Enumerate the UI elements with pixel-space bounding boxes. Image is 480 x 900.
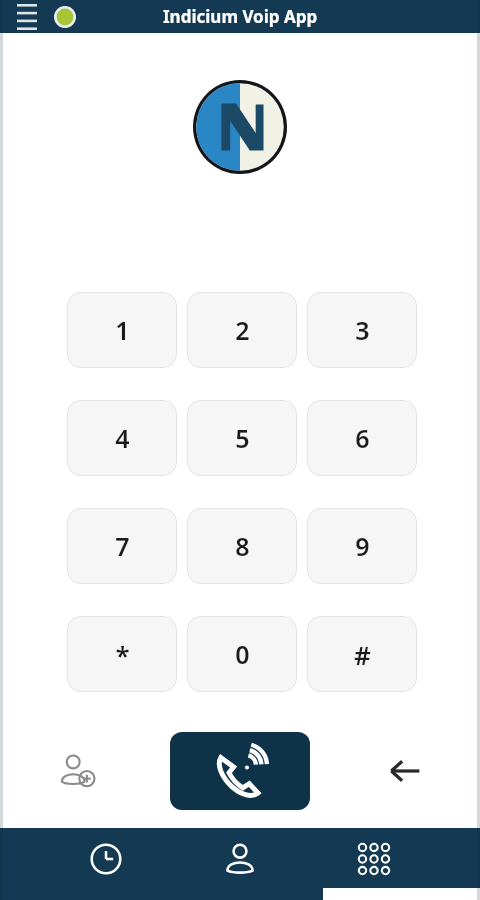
staticText: 6	[355, 421, 370, 455]
button[interactable]: Keypad	[346, 831, 402, 887]
button[interactable]: Recents	[78, 831, 134, 887]
button[interactable]: *	[67, 616, 177, 692]
button[interactable]: Call	[170, 732, 310, 810]
button[interactable]: 8	[187, 508, 297, 584]
staticText: 0	[235, 637, 250, 671]
staticText: 2	[235, 313, 250, 347]
button[interactable]: 2	[187, 292, 297, 368]
staticText: *	[115, 637, 130, 672]
button[interactable]: 9	[307, 508, 417, 584]
button[interactable]: Add contact	[52, 746, 102, 796]
staticText: 8	[235, 529, 250, 563]
button[interactable]: 4	[67, 400, 177, 476]
staticText: 3	[355, 313, 370, 347]
staticText: 1	[115, 313, 130, 347]
staticText: 4	[115, 421, 130, 455]
button[interactable]: 5	[187, 400, 297, 476]
button[interactable]: Backspace	[380, 746, 430, 796]
staticText: 7	[115, 529, 130, 563]
button[interactable]: #	[307, 616, 417, 692]
button[interactable]: 0	[187, 616, 297, 692]
button[interactable]: Contacts	[212, 831, 268, 887]
button[interactable]: 6	[307, 400, 417, 476]
staticText: Indicium Voip App	[163, 5, 318, 28]
button[interactable]: 7	[67, 508, 177, 584]
button[interactable]: 3	[307, 292, 417, 368]
button[interactable]: Menu	[14, 4, 40, 30]
staticText: #	[354, 637, 371, 672]
button[interactable]: 1	[67, 292, 177, 368]
staticText: 9	[355, 529, 370, 563]
staticText: 5	[235, 421, 250, 455]
